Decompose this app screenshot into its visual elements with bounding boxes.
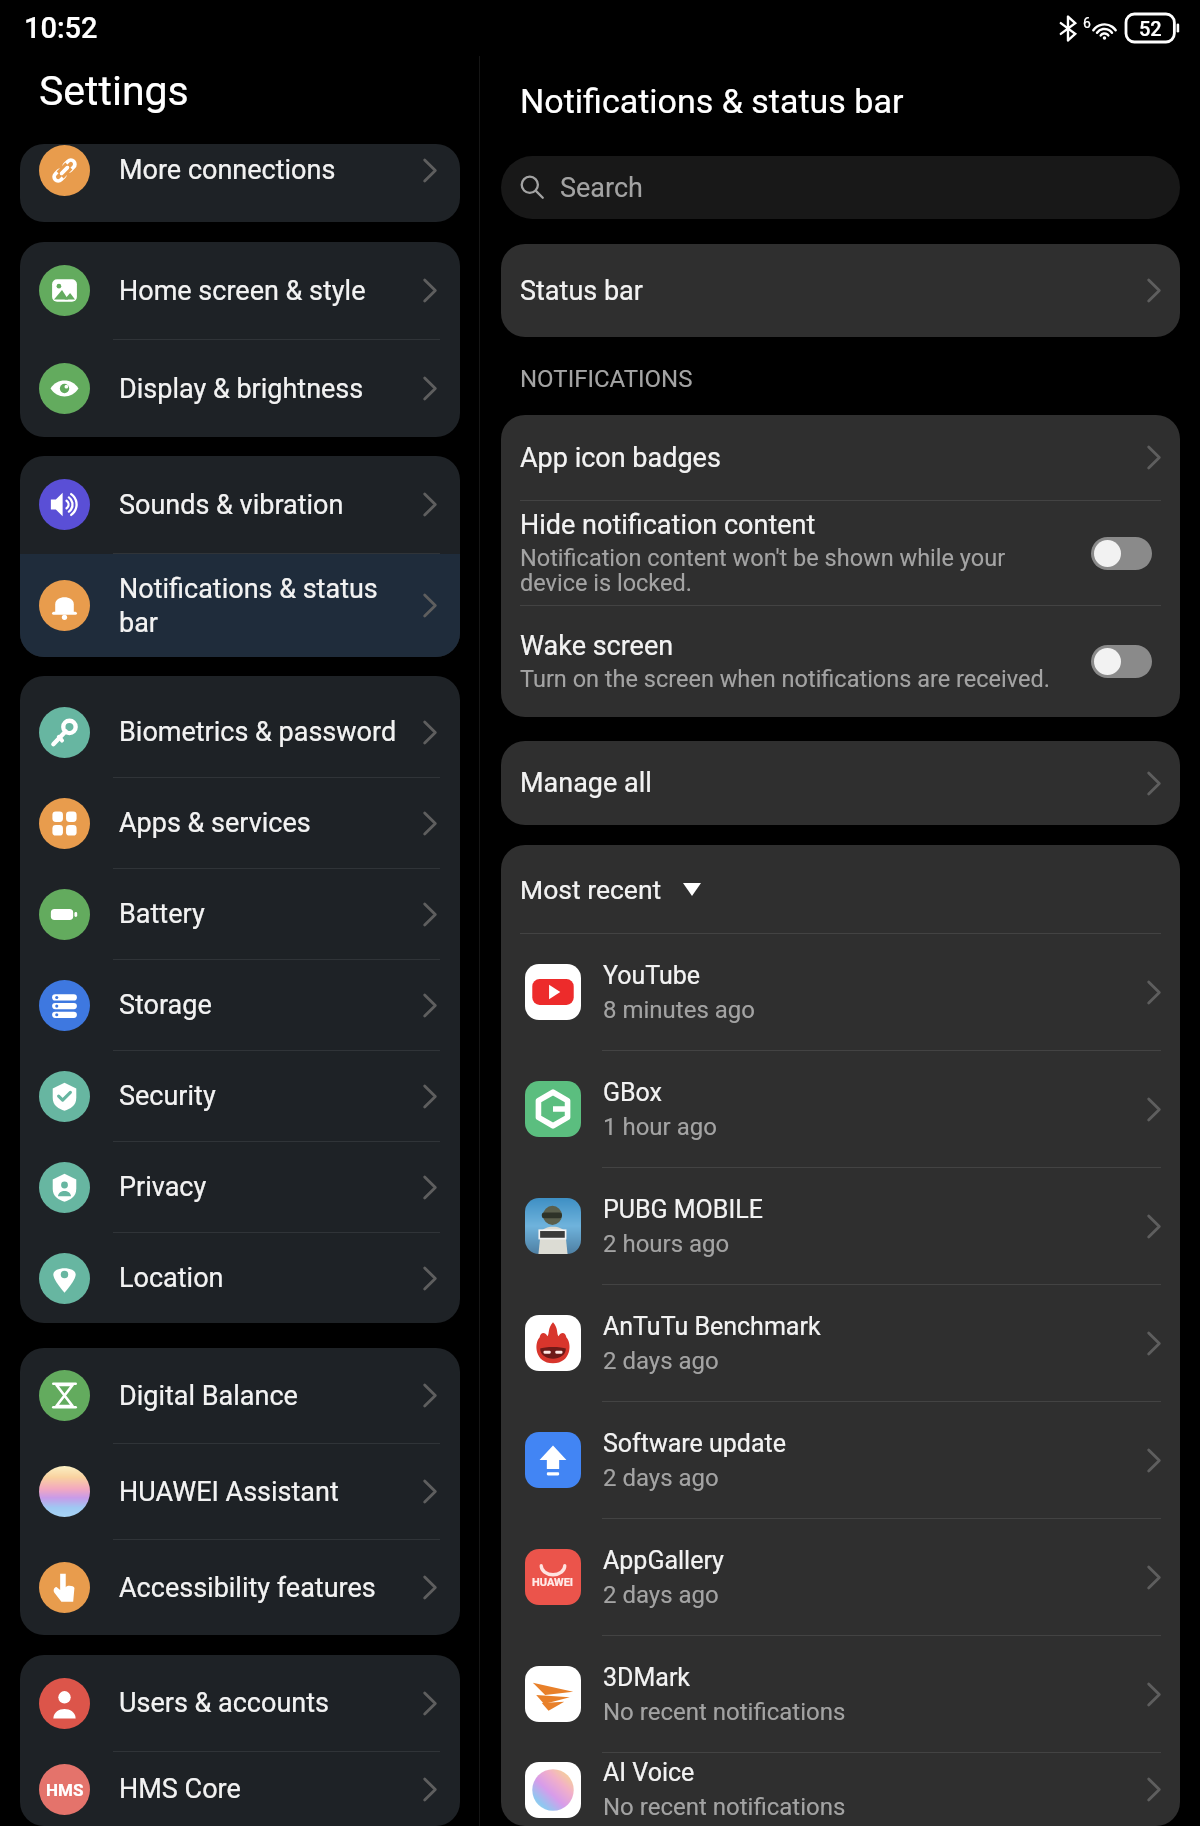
staticText: Settings	[39, 67, 189, 115]
staticText: 8 minutes ago	[603, 996, 755, 1024]
button[interactable]: Search	[501, 156, 1180, 219]
button[interactable]: Notifications & status bar	[20, 554, 460, 657]
button[interactable]: HUAWEI Assistant	[20, 1444, 460, 1539]
staticText: 2 days ago	[603, 1581, 719, 1609]
staticText: Software update	[603, 1429, 787, 1458]
staticText: Manage all	[520, 767, 1147, 799]
staticText: Privacy	[119, 1171, 415, 1203]
staticText: Most recent	[520, 874, 662, 905]
staticText: No recent notifications	[603, 1698, 846, 1726]
button[interactable]: Digital Balance	[20, 1348, 460, 1443]
button[interactable]: Biometrics & password	[20, 687, 460, 777]
button[interactable]: Hide notification content	[501, 501, 1180, 605]
button[interactable]: PUBG MOBILE	[501, 1168, 1180, 1284]
button[interactable]: GBox	[501, 1051, 1180, 1167]
staticText: Turn on the screen when notifications ar…	[520, 665, 1050, 693]
button[interactable]: Users & accounts	[20, 1655, 460, 1751]
staticText: Users & accounts	[119, 1687, 415, 1719]
staticText: App icon badges	[520, 442, 1147, 474]
staticText: HMS	[46, 1780, 84, 1800]
button[interactable]: Status bar	[501, 244, 1180, 337]
button[interactable]: Privacy	[20, 1142, 460, 1232]
staticText: Display & brightness	[119, 373, 415, 405]
staticText: Battery	[119, 898, 415, 930]
staticText: HMS Core	[119, 1773, 415, 1805]
staticText: 2 days ago	[603, 1347, 719, 1375]
staticText: Notifications & status bar	[119, 573, 415, 639]
staticText: 6	[1083, 15, 1091, 31]
staticText: Security	[119, 1080, 415, 1112]
button[interactable]: Accessibility features	[20, 1540, 460, 1635]
button[interactable]: Storage	[20, 960, 460, 1050]
staticText: More connections	[119, 154, 415, 186]
button[interactable]: Security	[20, 1051, 460, 1141]
staticText: Biometrics & password	[119, 716, 415, 748]
button[interactable]: Software update	[501, 1402, 1180, 1518]
staticText: GBox	[603, 1078, 663, 1107]
button[interactable]: Sounds & vibration	[20, 456, 460, 553]
staticText: 1 hour ago	[603, 1113, 717, 1141]
staticText: AnTuTu Benchmark	[603, 1312, 821, 1341]
button[interactable]: 3DMark	[501, 1636, 1180, 1752]
staticText: Accessibility features	[119, 1572, 415, 1604]
staticText: 3DMark	[603, 1663, 691, 1692]
staticText: Wake screen	[520, 630, 674, 662]
staticText: Sounds & vibration	[119, 489, 415, 521]
staticText: HUAWEI	[532, 1576, 574, 1589]
button[interactable]: Manage all	[501, 741, 1180, 825]
button[interactable]: Display & brightness	[20, 340, 460, 437]
button[interactable]: Battery	[20, 869, 460, 959]
button[interactable]: Most recent	[501, 845, 1180, 933]
staticText: Notification content won't be shown whil…	[520, 544, 1006, 597]
button[interactable]: Apps & services	[20, 778, 460, 868]
button[interactable]: Location	[20, 1233, 460, 1323]
staticText: Apps & services	[119, 807, 415, 839]
staticText: Search	[560, 172, 643, 204]
staticText: 52	[1139, 17, 1162, 40]
button[interactable]: Home screen & style	[20, 242, 460, 339]
staticText: YouTube	[603, 961, 701, 990]
staticText: 10:52	[24, 11, 98, 45]
staticText: Storage	[119, 989, 415, 1021]
staticText: HUAWEI Assistant	[119, 1476, 415, 1508]
staticText: Digital Balance	[119, 1380, 415, 1412]
button[interactable]: AnTuTu Benchmark	[501, 1285, 1180, 1401]
button[interactable]: App icon badges	[501, 415, 1180, 500]
staticText: Home screen & style	[119, 275, 415, 307]
staticText: 2 days ago	[603, 1464, 719, 1492]
staticText: AI Voice	[603, 1758, 695, 1787]
staticText: 2 hours ago	[603, 1230, 730, 1258]
staticText: No recent notifications	[603, 1793, 846, 1821]
button[interactable]: Wake screen	[501, 606, 1180, 717]
staticText: Hide notification content	[520, 509, 816, 541]
button[interactable]: AI Voice	[501, 1753, 1180, 1826]
button[interactable]: HMS	[20, 1752, 460, 1826]
staticText: PUBG MOBILE	[603, 1195, 763, 1224]
staticText: NOTIFICATIONS	[520, 365, 693, 393]
button[interactable]: YouTube	[501, 934, 1180, 1050]
button[interactable]: HUAWEI	[501, 1519, 1180, 1635]
staticText: AppGallery	[603, 1546, 724, 1575]
staticText: Notifications & status bar	[520, 81, 904, 121]
staticText: Status bar	[520, 275, 1147, 307]
staticText: Location	[119, 1262, 415, 1294]
button[interactable]: More connections	[20, 144, 460, 196]
